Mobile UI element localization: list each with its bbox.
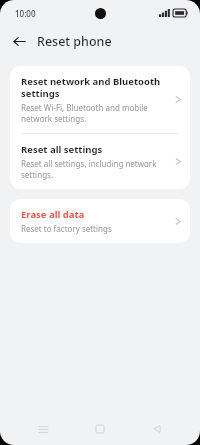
- button[interactable]: Recent apps: [29, 415, 57, 443]
- button[interactable]: Reset network and Bluetooth settings: [10, 66, 190, 133]
- staticText: Reset Wi-Fi, Bluetooth and mobile networ…: [21, 102, 169, 124]
- button[interactable]: Back: [7, 29, 31, 53]
- staticText: Reset network and Bluetooth settings: [21, 75, 169, 100]
- staticText: Reset phone: [37, 33, 112, 50]
- staticText: Reset all settings, including network se…: [21, 158, 169, 180]
- button[interactable]: Erase all data: [10, 199, 190, 243]
- button[interactable]: Reset all settings: [10, 134, 190, 189]
- staticText: 10:00: [15, 8, 36, 19]
- staticText: Erase all data: [21, 208, 85, 221]
- button[interactable]: Home: [86, 415, 114, 443]
- button[interactable]: Back: [143, 415, 171, 443]
- staticText: Reset all settings: [21, 143, 103, 156]
- staticText: Reset to factory settings: [21, 223, 112, 234]
